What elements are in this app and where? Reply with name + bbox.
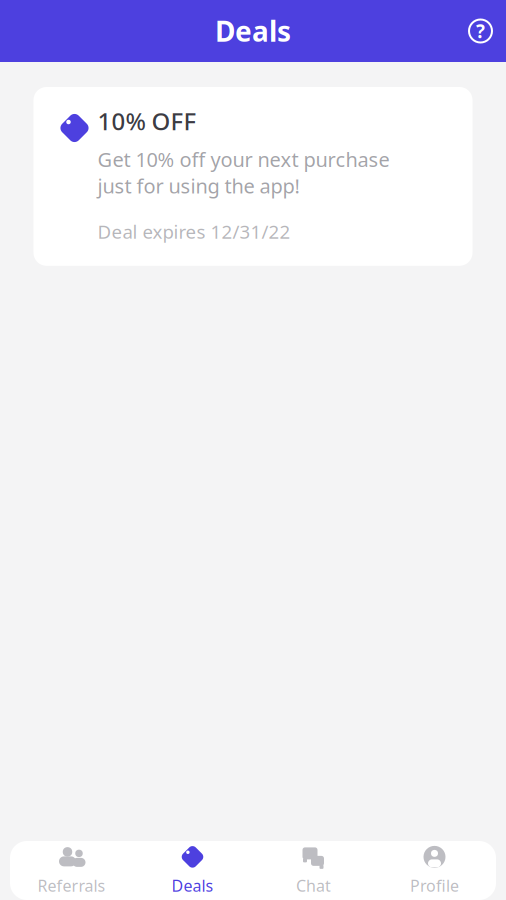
staticText: 10% OFF — [97, 105, 196, 137]
staticText: Chat — [296, 875, 331, 896]
staticText: ? — [476, 19, 485, 43]
button[interactable]: Referrals — [11, 841, 132, 900]
button[interactable]: 10% OFF — [33, 87, 472, 266]
staticText: Get 10% off your next purchase just for … — [97, 146, 389, 199]
staticText: Referrals — [37, 875, 105, 896]
button[interactable]: Chat — [253, 841, 374, 900]
button[interactable]: Help — [454, 5, 506, 57]
button[interactable]: Profile — [374, 841, 495, 900]
staticText: Deals — [215, 12, 291, 50]
staticText: Deal expires 12/31/22 — [97, 219, 290, 244]
staticText: Profile — [410, 875, 459, 896]
staticText: Deals — [171, 875, 213, 896]
button[interactable]: Deals — [132, 841, 253, 900]
